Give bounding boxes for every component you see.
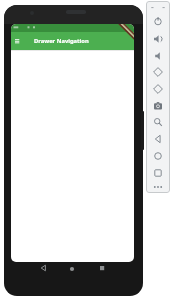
- button[interactable]: [151, 149, 165, 163]
- staticText: Drawer Navigation: [34, 37, 89, 45]
- button[interactable]: [151, 180, 165, 194]
- button[interactable]: [151, 115, 165, 129]
- button[interactable]: [151, 166, 165, 180]
- button[interactable]: [13, 37, 21, 45]
- button[interactable]: [97, 263, 107, 273]
- button[interactable]: [151, 49, 165, 63]
- button[interactable]: [151, 82, 165, 96]
- button[interactable]: [151, 99, 165, 113]
- button[interactable]: [151, 65, 165, 79]
- button[interactable]: [67, 264, 77, 274]
- button[interactable]: [151, 132, 165, 146]
- button[interactable]: [151, 32, 165, 46]
- button[interactable]: [38, 263, 48, 273]
- button[interactable]: [151, 14, 165, 28]
